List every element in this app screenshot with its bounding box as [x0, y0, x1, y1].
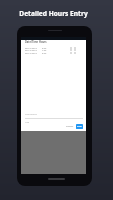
staticText: Detailed Hours Entry [0, 9, 110, 18]
button[interactable]: CANCEL [65, 124, 75, 129]
staticText: Date/Time [25, 40, 39, 43]
staticText: Add [25, 121, 30, 124]
staticText: 8.00 [42, 52, 47, 54]
button[interactable]: 06/12/2019 [21, 47, 86, 49]
staticText: 06/13/2019 [25, 49, 37, 51]
staticText: Comments [25, 113, 37, 116]
staticText: 06/14/2019 [25, 52, 37, 54]
button[interactable]: 06/14/2019 [21, 52, 86, 54]
staticText: 06/12/2019 [25, 47, 37, 49]
staticText: CANCEL [66, 125, 74, 128]
button[interactable]: 06/13/2019 [21, 49, 86, 51]
button[interactable]: SAVE [76, 124, 83, 129]
staticText: SAVE [77, 125, 82, 128]
staticText: 8.00 [42, 47, 47, 49]
staticText: 7.50 [42, 49, 47, 51]
staticText: Hours [39, 40, 47, 43]
